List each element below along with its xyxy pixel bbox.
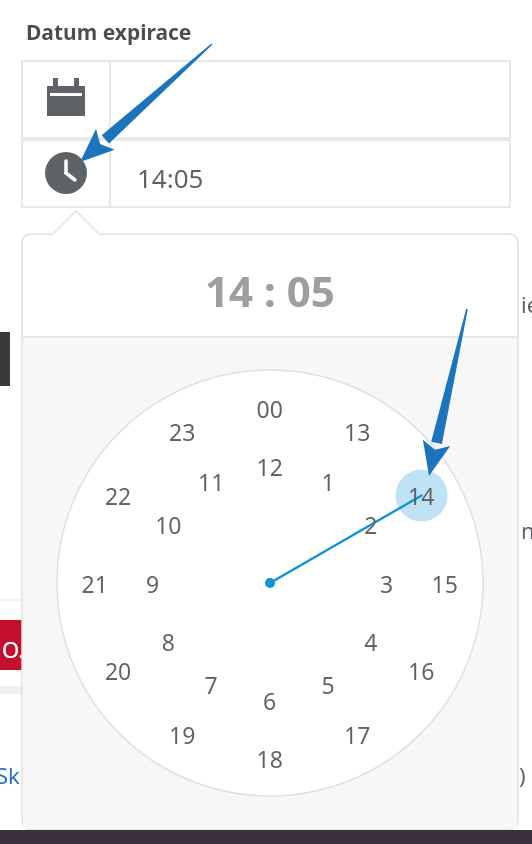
- button[interactable]: [22, 234, 518, 830]
- button[interactable]: Pick time: [22, 140, 110, 207]
- button[interactable]: Pick date: [22, 61, 110, 138]
